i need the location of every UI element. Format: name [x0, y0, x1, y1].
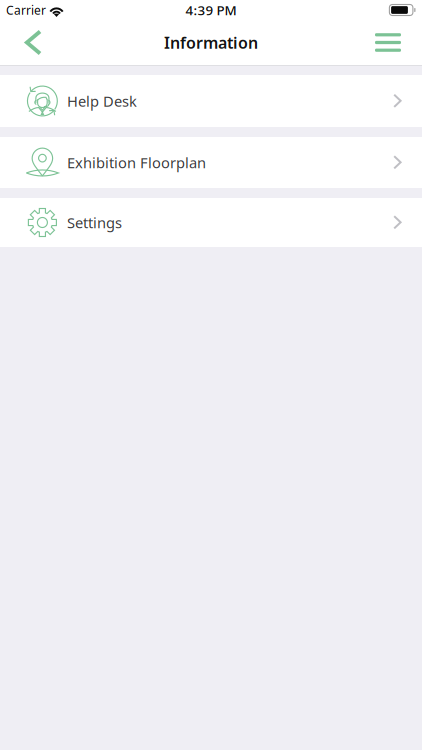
staticText: Settings [67, 213, 122, 232]
button[interactable]: Help Desk [0, 75, 422, 127]
button[interactable]: Exhibition Floorplan [0, 137, 422, 188]
staticText: Carrier [6, 2, 46, 18]
staticText: Help Desk [67, 91, 137, 111]
staticText: 4:39 PM [185, 1, 236, 19]
staticText: Information [164, 32, 258, 53]
button[interactable]: Settings [0, 198, 422, 247]
button[interactable]: Menu [362, 20, 414, 64]
staticText: Exhibition Floorplan [67, 153, 206, 172]
button[interactable]: Back [9, 20, 55, 65]
